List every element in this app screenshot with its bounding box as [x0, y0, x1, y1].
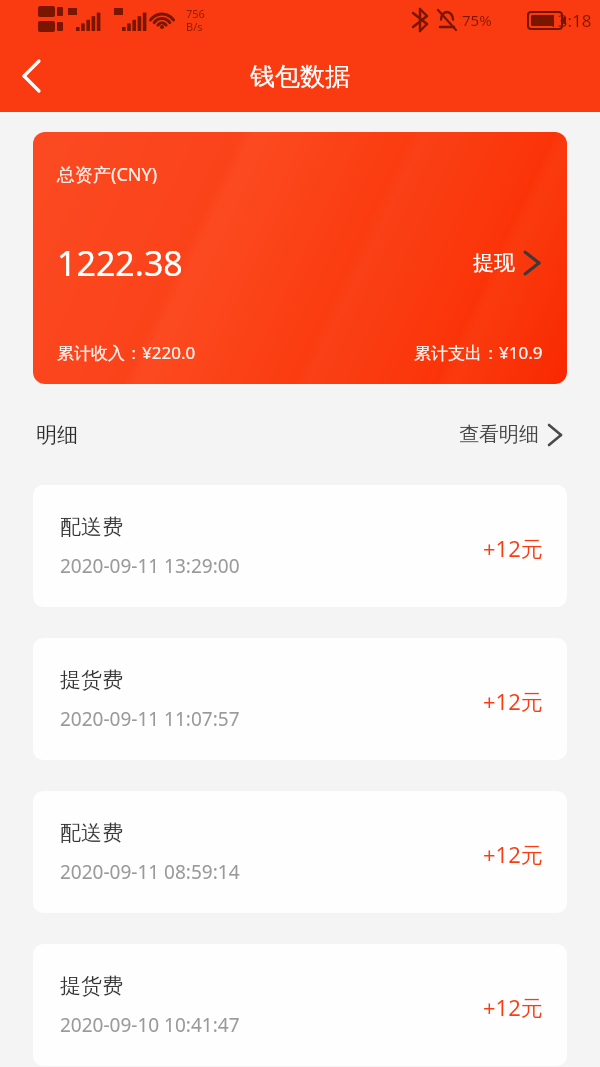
staticText: +12元 — [483, 533, 543, 563]
staticText: +12元 — [483, 992, 543, 1022]
staticText: 2020-09-11 11:07:57 — [60, 706, 240, 732]
staticText: 配送费 — [60, 820, 123, 846]
staticText: 总资产(CNY) — [57, 162, 158, 187]
staticText: 13:18 — [548, 9, 592, 32]
staticText: 1222.38 — [57, 240, 183, 286]
button[interactable]: Back — [0, 48, 56, 104]
button[interactable]: 提货费 — [33, 638, 567, 760]
button[interactable]: 查看明细 — [459, 422, 564, 447]
button[interactable]: 提现 — [473, 250, 543, 276]
button[interactable]: 总资产(CNY) — [33, 132, 567, 384]
button[interactable]: 提货费 — [33, 944, 567, 1066]
staticText: 2020-09-10 10:41:47 — [60, 1012, 240, 1038]
staticText: 钱包数据 — [0, 61, 600, 92]
button[interactable]: 配送费 — [33, 485, 567, 607]
staticText: 提货费 — [60, 667, 123, 693]
staticText: 提货费 — [60, 973, 123, 999]
staticText: +12元 — [483, 686, 543, 716]
staticText: 2020-09-11 13:29:00 — [60, 553, 240, 579]
staticText: 明细 — [36, 422, 78, 448]
staticText: 2020-09-11 08:59:14 — [60, 859, 240, 885]
staticText: 累计支出：¥10.9 — [414, 341, 543, 364]
staticText: 756 B/s — [186, 6, 205, 34]
staticText: 查看明细 — [459, 422, 539, 447]
staticText: 配送费 — [60, 514, 123, 540]
button[interactable]: 配送费 — [33, 791, 567, 913]
staticText: +12元 — [483, 839, 543, 869]
staticText: 75% — [462, 10, 492, 30]
staticText: 提现 — [473, 250, 515, 276]
staticText: 累计收入：¥220.0 — [57, 341, 196, 364]
